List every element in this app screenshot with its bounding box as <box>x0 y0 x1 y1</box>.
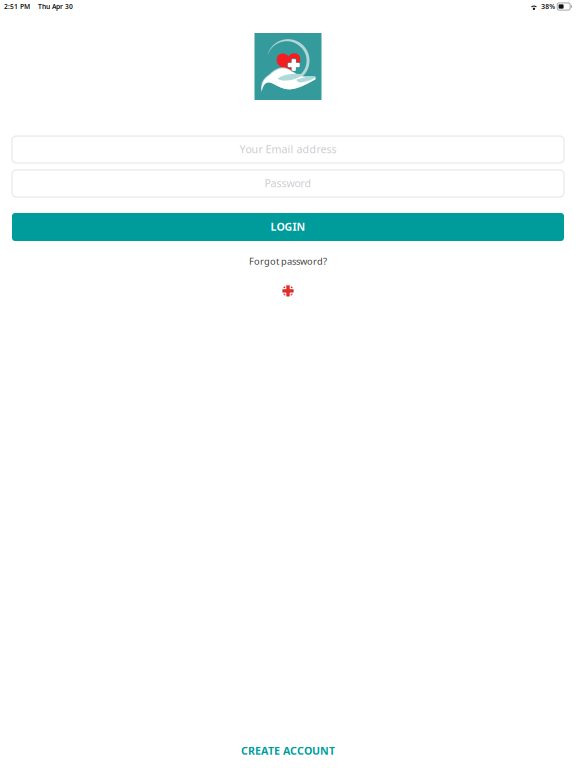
staticText: CREATE ACCOUNT <box>241 743 335 758</box>
staticText: 38% <box>541 2 555 11</box>
button[interactable]: LOGIN <box>12 213 564 241</box>
staticText: 2:51 PM <box>4 2 30 11</box>
button[interactable]: Forgot password? <box>249 255 327 267</box>
staticText: Thu Apr 30 <box>38 2 73 11</box>
staticText: Forgot password? <box>249 255 327 267</box>
staticText: Password <box>264 176 311 190</box>
staticText: LOGIN <box>270 219 305 234</box>
button[interactable]: CREATE ACCOUNT <box>0 742 576 759</box>
button[interactable]: Password <box>12 170 564 197</box>
staticText: Your Email address <box>239 142 336 156</box>
button[interactable]: Language <box>282 285 293 296</box>
button[interactable]: Your Email address <box>12 136 564 163</box>
